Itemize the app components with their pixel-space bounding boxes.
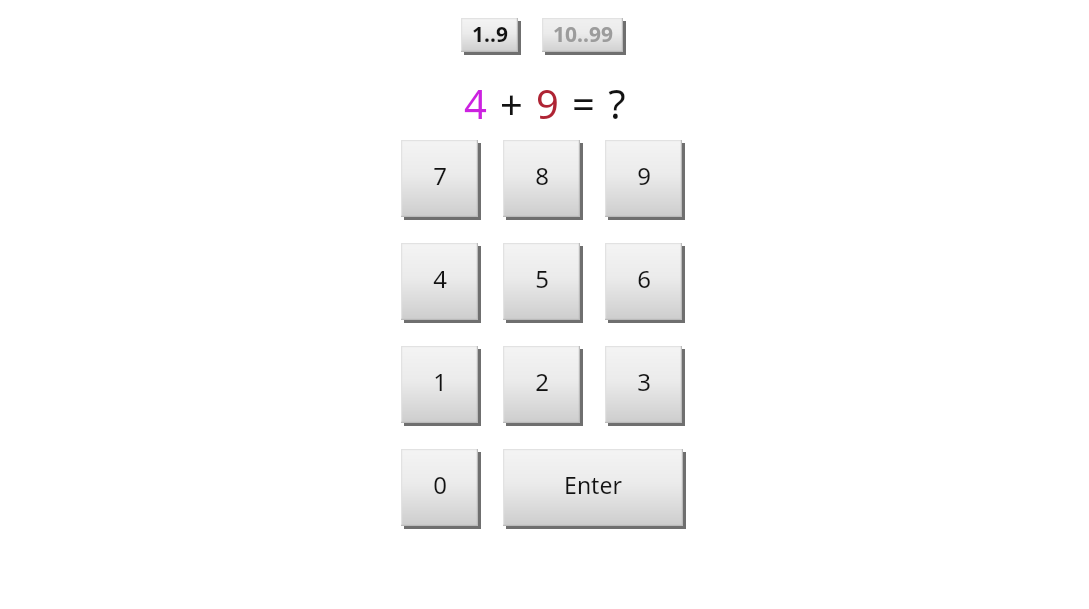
- staticText: ?: [608, 76, 626, 130]
- button[interactable]: 1: [401, 346, 481, 426]
- staticText: 6: [637, 262, 651, 295]
- button[interactable]: 7: [401, 140, 481, 220]
- staticText: 1..9: [472, 20, 508, 49]
- staticText: Enter: [564, 469, 622, 500]
- button[interactable]: 2: [503, 346, 583, 426]
- button[interactable]: Enter: [503, 449, 686, 529]
- staticText: 9: [536, 76, 559, 130]
- staticText: 9: [637, 159, 651, 192]
- button[interactable]: 3: [605, 346, 685, 426]
- button[interactable]: 8: [503, 140, 583, 220]
- button[interactable]: Range 1 to 9: [461, 18, 521, 55]
- button[interactable]: 0: [401, 449, 481, 529]
- staticText: 3: [637, 365, 651, 398]
- staticText: 0: [433, 468, 447, 501]
- staticText: +: [500, 76, 523, 130]
- staticText: =: [572, 76, 595, 130]
- staticText: 4: [464, 76, 487, 130]
- staticText: 7: [433, 159, 447, 192]
- button[interactable]: 4: [401, 243, 481, 323]
- button[interactable]: 9: [605, 140, 685, 220]
- staticText: 4: [433, 262, 447, 295]
- staticText: 2: [535, 365, 549, 398]
- button[interactable]: Range 10 to 99: [542, 18, 626, 55]
- button[interactable]: 6: [605, 243, 685, 323]
- staticText: 8: [535, 159, 549, 192]
- staticText: 5: [535, 262, 549, 295]
- staticText: 1: [433, 365, 447, 398]
- button[interactable]: 5: [503, 243, 583, 323]
- staticText: 10..99: [553, 20, 613, 49]
